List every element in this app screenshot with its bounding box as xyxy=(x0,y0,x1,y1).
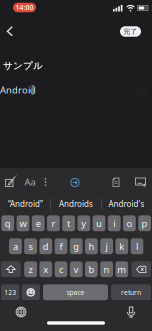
staticText: 完了 xyxy=(123,27,137,36)
button[interactable]: y xyxy=(77,215,90,231)
button[interactable]: “Android” xyxy=(1,195,50,212)
staticText: return xyxy=(121,288,141,297)
staticText: n xyxy=(104,263,110,276)
staticText: w xyxy=(19,217,26,230)
staticText: Android's xyxy=(108,199,144,209)
button[interactable]: m xyxy=(115,261,128,277)
staticText: z xyxy=(29,263,33,276)
staticText: b xyxy=(88,263,94,276)
staticText: e xyxy=(36,217,41,230)
staticText: a xyxy=(13,240,18,253)
button[interactable]: f xyxy=(55,238,67,254)
button[interactable]: Androids xyxy=(51,195,100,212)
staticText: c xyxy=(59,263,63,276)
button[interactable]: return xyxy=(111,284,151,300)
button[interactable]: Add keyboard xyxy=(135,177,146,187)
button[interactable]: p xyxy=(138,215,151,231)
button[interactable]: More xyxy=(44,178,46,186)
staticText: p xyxy=(142,217,148,230)
button[interactable]: 123 xyxy=(1,284,19,300)
button[interactable]: o xyxy=(123,215,136,231)
button[interactable]: Back xyxy=(6,26,13,37)
button[interactable]: v xyxy=(70,261,83,277)
button[interactable]: a xyxy=(9,238,22,254)
button[interactable]: b xyxy=(85,261,98,277)
staticText: Android xyxy=(0,84,36,96)
button[interactable]: t xyxy=(62,215,75,231)
button[interactable]: l xyxy=(131,238,143,254)
button[interactable]: z xyxy=(24,261,37,277)
staticText: k xyxy=(119,240,124,253)
button[interactable]: c xyxy=(55,261,67,277)
staticText: d xyxy=(43,240,49,253)
button[interactable]: Emoji xyxy=(21,284,40,300)
button[interactable]: h xyxy=(85,238,98,254)
staticText: Androids xyxy=(59,199,93,209)
staticText: 123 xyxy=(4,288,16,297)
button[interactable]: r xyxy=(47,215,60,231)
staticText: s xyxy=(29,240,33,253)
button[interactable]: Shift xyxy=(1,261,21,277)
staticText: サンプル xyxy=(3,60,43,72)
button[interactable]: i xyxy=(108,215,121,231)
button[interactable]: n xyxy=(100,261,113,277)
staticText: y xyxy=(81,217,86,230)
staticText: h xyxy=(88,240,94,253)
button[interactable]: Next keyboard xyxy=(15,306,26,317)
button[interactable]: w xyxy=(17,215,29,231)
button[interactable]: Dictation xyxy=(126,306,136,317)
staticText: 14:00 xyxy=(15,3,33,12)
staticText: space xyxy=(66,288,84,297)
staticText: f xyxy=(59,240,62,253)
button[interactable]: g xyxy=(70,238,83,254)
staticText: g xyxy=(73,240,79,253)
button[interactable]: x xyxy=(39,261,52,277)
staticText: m xyxy=(117,263,126,276)
button[interactable]: Autofill xyxy=(70,177,80,187)
button[interactable]: Markup xyxy=(5,177,15,187)
button[interactable]: Android's xyxy=(102,195,151,212)
staticText: Aa xyxy=(24,176,35,188)
staticText: i xyxy=(113,217,115,230)
button[interactable]: q xyxy=(1,215,14,231)
button[interactable]: Format xyxy=(24,176,35,188)
button[interactable]: j xyxy=(100,238,113,254)
staticText: t xyxy=(67,217,70,230)
button[interactable]: s xyxy=(24,238,37,254)
staticText: q xyxy=(5,217,11,230)
staticText: x xyxy=(43,263,48,276)
staticText: “Android” xyxy=(8,199,43,209)
staticText: u xyxy=(96,217,102,230)
staticText: j xyxy=(106,240,108,253)
button[interactable]: space xyxy=(43,284,108,300)
staticText: r xyxy=(51,217,55,230)
staticText: o xyxy=(126,217,132,230)
button[interactable]: 完了 xyxy=(120,26,141,37)
button[interactable]: Delete xyxy=(131,261,151,277)
staticText: v xyxy=(74,263,79,276)
button[interactable]: d xyxy=(39,238,52,254)
button[interactable]: k xyxy=(115,238,128,254)
staticText: l xyxy=(136,240,138,253)
button[interactable]: u xyxy=(93,215,105,231)
button[interactable]: e xyxy=(32,215,45,231)
button[interactable]: Paste xyxy=(112,177,119,187)
